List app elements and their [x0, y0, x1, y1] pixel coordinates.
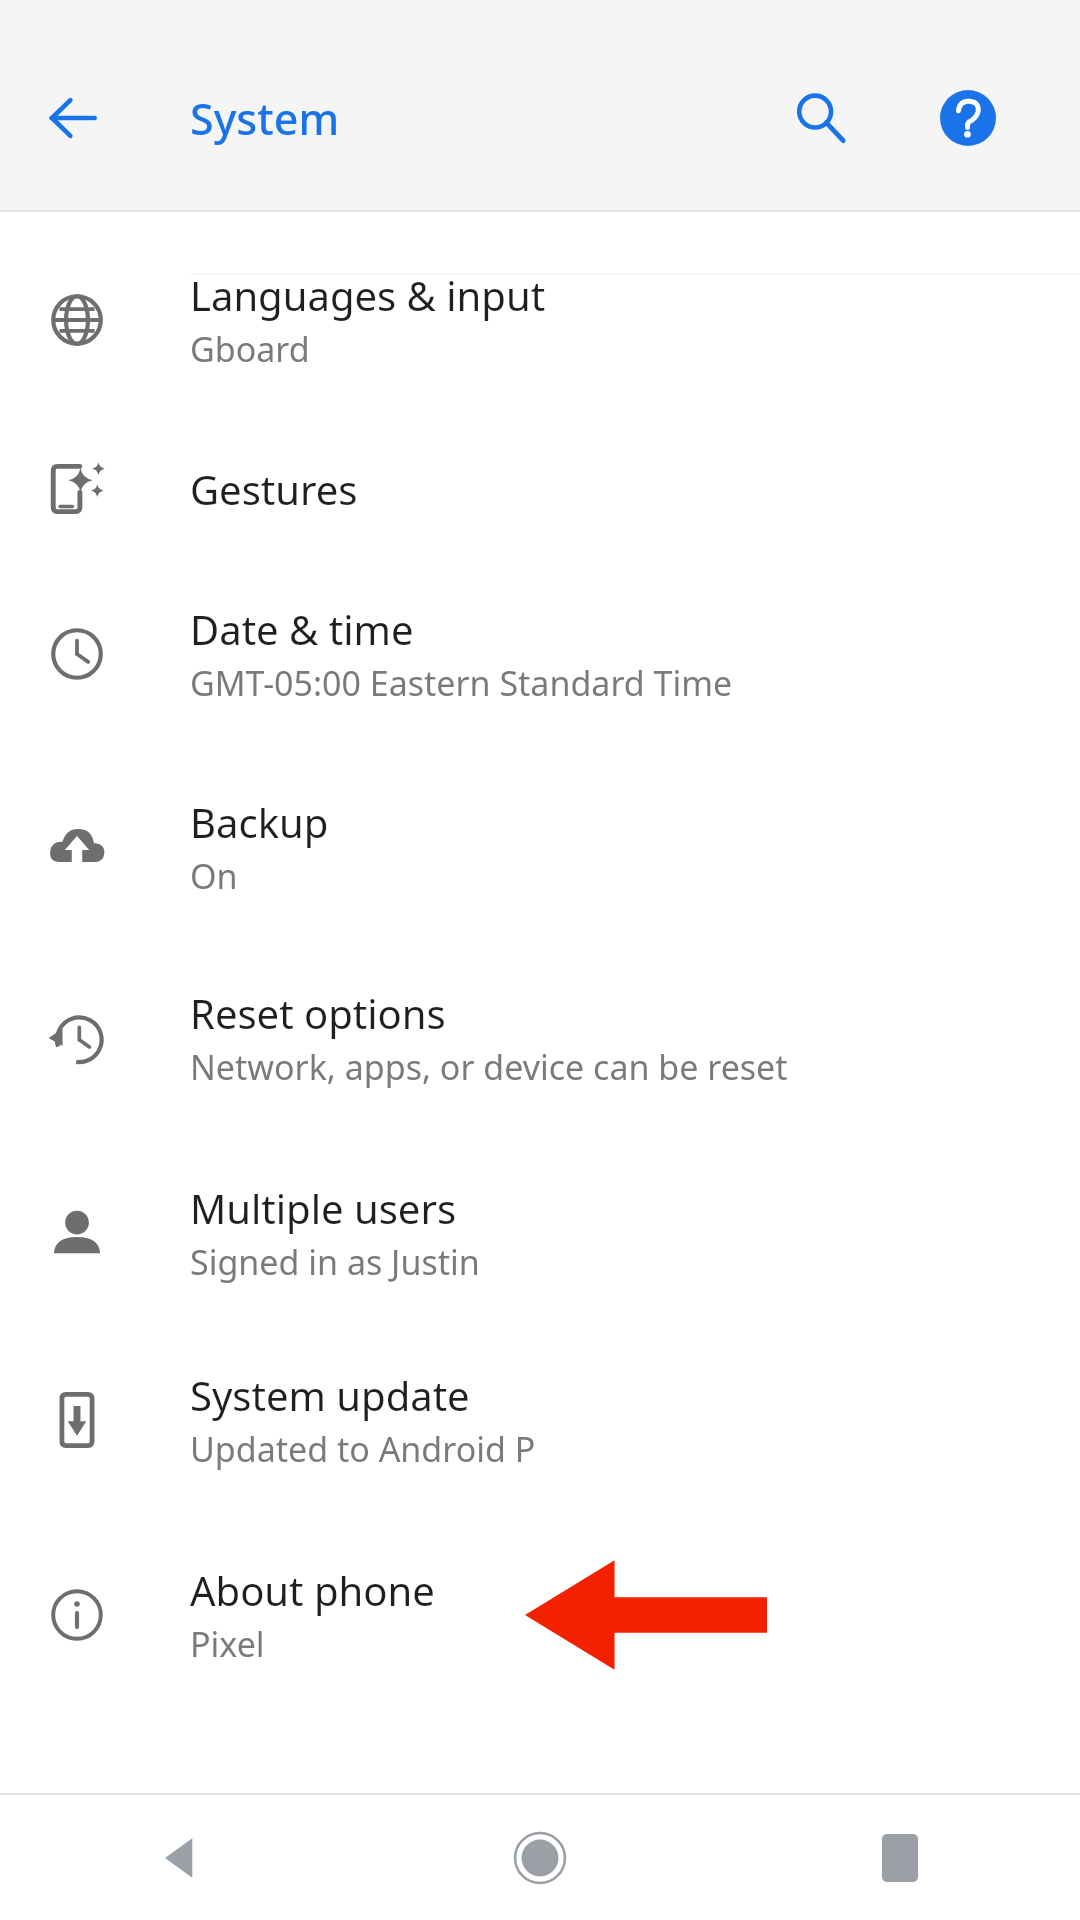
staticText: Gestures [190, 462, 358, 516]
button[interactable]: Date & time [0, 574, 1080, 734]
staticText: Date & time [190, 602, 414, 656]
staticText: GMT-05:00 Eastern Standard Time [190, 660, 733, 706]
staticText: Network, apps, or device can be reset [190, 1044, 788, 1090]
staticText: Signed in as Justin [190, 1239, 480, 1285]
button[interactable]: About phone [0, 1535, 1080, 1695]
button[interactable]: Recent apps [850, 1808, 950, 1908]
button[interactable]: Backup [0, 767, 1080, 927]
staticText: System [190, 89, 340, 148]
staticText: Gboard [190, 326, 310, 372]
staticText: Backup [190, 795, 329, 849]
button[interactable]: Back [130, 1808, 230, 1908]
button[interactable]: Help [918, 68, 1018, 168]
button[interactable]: Home [490, 1808, 590, 1908]
button[interactable]: System update [0, 1340, 1080, 1500]
staticText: On [190, 853, 238, 899]
button[interactable]: Reset options [0, 958, 1080, 1118]
button[interactable]: Gestures [0, 409, 1080, 569]
staticText: Reset options [190, 986, 446, 1040]
button[interactable]: Search [770, 68, 870, 168]
staticText: Languages & input [190, 268, 546, 322]
staticText: Updated to Android P [190, 1426, 536, 1472]
staticText: System update [190, 1368, 470, 1422]
button[interactable]: Languages & input [0, 240, 1080, 400]
staticText: About phone [190, 1563, 435, 1617]
staticText: Multiple users [190, 1181, 457, 1235]
staticText: Pixel [190, 1621, 265, 1667]
button[interactable]: Back [22, 68, 122, 168]
button[interactable]: Multiple users [0, 1153, 1080, 1313]
